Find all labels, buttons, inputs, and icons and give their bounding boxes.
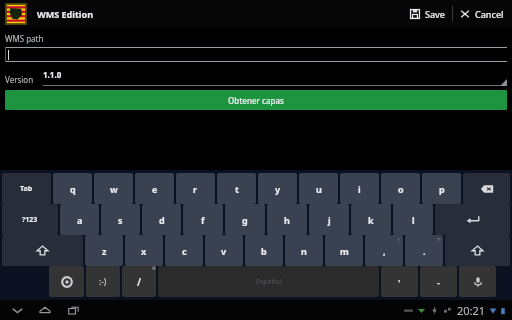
staticText: p	[439, 183, 445, 195]
button[interactable]: .	[405, 235, 443, 266]
button[interactable]: Voice input	[459, 266, 496, 297]
staticText: 1.1.0	[43, 69, 62, 80]
button[interactable]: o	[381, 173, 420, 204]
button[interactable]: w	[94, 173, 133, 204]
button[interactable]: '	[381, 266, 418, 297]
staticText: ,	[383, 245, 386, 257]
button[interactable]: ,	[365, 235, 403, 266]
button[interactable]: y	[258, 173, 297, 204]
staticText: 20:21	[457, 303, 486, 318]
button[interactable]: Obtener capas	[5, 90, 507, 110]
staticText: i	[358, 183, 361, 195]
button[interactable]: l	[393, 204, 433, 235]
staticText: q	[70, 183, 76, 195]
button[interactable]: z	[85, 235, 123, 266]
staticText: .	[423, 245, 426, 257]
staticText: ?	[437, 236, 440, 244]
button[interactable]: s	[101, 204, 140, 235]
button[interactable]: k	[351, 204, 391, 235]
staticText: c	[182, 245, 187, 257]
staticText: z	[102, 245, 107, 257]
button[interactable]: Cancel	[453, 0, 512, 27]
button[interactable]: e	[135, 173, 174, 204]
button[interactable]: App icon	[5, 3, 26, 24]
button[interactable]: h	[267, 204, 307, 235]
button[interactable]: m	[325, 235, 363, 266]
staticText: '	[398, 276, 401, 288]
button[interactable]: Shift	[2, 235, 83, 266]
button[interactable]: Save	[403, 0, 452, 27]
staticText: Cancel	[475, 8, 504, 20]
button[interactable]: t	[217, 173, 256, 204]
staticText: Obtener capas	[228, 95, 284, 106]
staticText: f	[201, 214, 205, 226]
staticText: Save	[425, 8, 446, 20]
staticText: /	[137, 275, 142, 289]
button[interactable]: :-)	[86, 266, 120, 297]
staticText: h	[284, 214, 290, 226]
button[interactable]: q	[53, 173, 92, 204]
button[interactable]: Enter	[435, 204, 510, 235]
staticText: o	[398, 183, 404, 195]
staticText: u	[316, 183, 322, 195]
staticText: e	[152, 183, 158, 195]
staticText: k	[368, 214, 374, 226]
button[interactable]: Hide keyboard	[8, 301, 26, 319]
button[interactable]: Delete	[463, 173, 510, 204]
staticText: r	[193, 183, 198, 195]
staticText: v	[221, 245, 227, 257]
button[interactable]: f	[183, 204, 223, 235]
staticText: m	[340, 245, 349, 257]
button[interactable]: a	[60, 204, 99, 235]
staticText: j	[328, 214, 331, 226]
staticText: d	[159, 214, 165, 226]
button[interactable]: n	[285, 235, 323, 266]
button[interactable]: b	[245, 235, 283, 266]
staticText: :-)	[99, 276, 107, 287]
button[interactable]: i	[340, 173, 379, 204]
button[interactable]: u	[299, 173, 338, 204]
button[interactable]: Shift	[445, 235, 510, 266]
button[interactable]: Settings	[49, 266, 84, 297]
staticText: -	[437, 276, 440, 288]
staticText: a	[77, 214, 83, 226]
button[interactable]: ?123	[2, 204, 58, 235]
button[interactable]: Home	[36, 301, 54, 319]
staticText: y	[275, 183, 281, 195]
button[interactable]: v	[205, 235, 243, 266]
button[interactable]: r	[176, 173, 215, 204]
staticText: Español	[256, 277, 282, 287]
button[interactable]: Tab	[2, 173, 51, 204]
staticText: s	[118, 214, 123, 226]
staticText: g	[242, 214, 248, 226]
button[interactable]: j	[309, 204, 349, 235]
button[interactable]: Recents	[64, 301, 82, 319]
staticText: w	[110, 183, 118, 195]
button[interactable]: d	[142, 204, 181, 235]
button[interactable]: x	[125, 235, 163, 266]
staticText: Version	[5, 74, 34, 85]
button[interactable]: c	[165, 235, 203, 266]
button[interactable]: g	[225, 204, 265, 235]
button[interactable]	[5, 47, 507, 62]
staticText: b	[261, 245, 267, 257]
button[interactable]: p	[422, 173, 461, 204]
button[interactable]: Version	[5, 69, 507, 86]
staticText: t	[235, 183, 239, 195]
staticText: l	[412, 214, 415, 226]
button[interactable]: -	[420, 266, 457, 297]
staticText: Tab	[20, 184, 33, 194]
staticText: ?123	[22, 215, 38, 225]
button[interactable]: /	[122, 266, 156, 297]
staticText: x	[141, 245, 147, 257]
staticText: WMS Edition	[37, 8, 93, 20]
staticText: WMS path	[5, 33, 44, 44]
staticText: n	[301, 245, 307, 257]
staticText: !	[398, 236, 400, 244]
